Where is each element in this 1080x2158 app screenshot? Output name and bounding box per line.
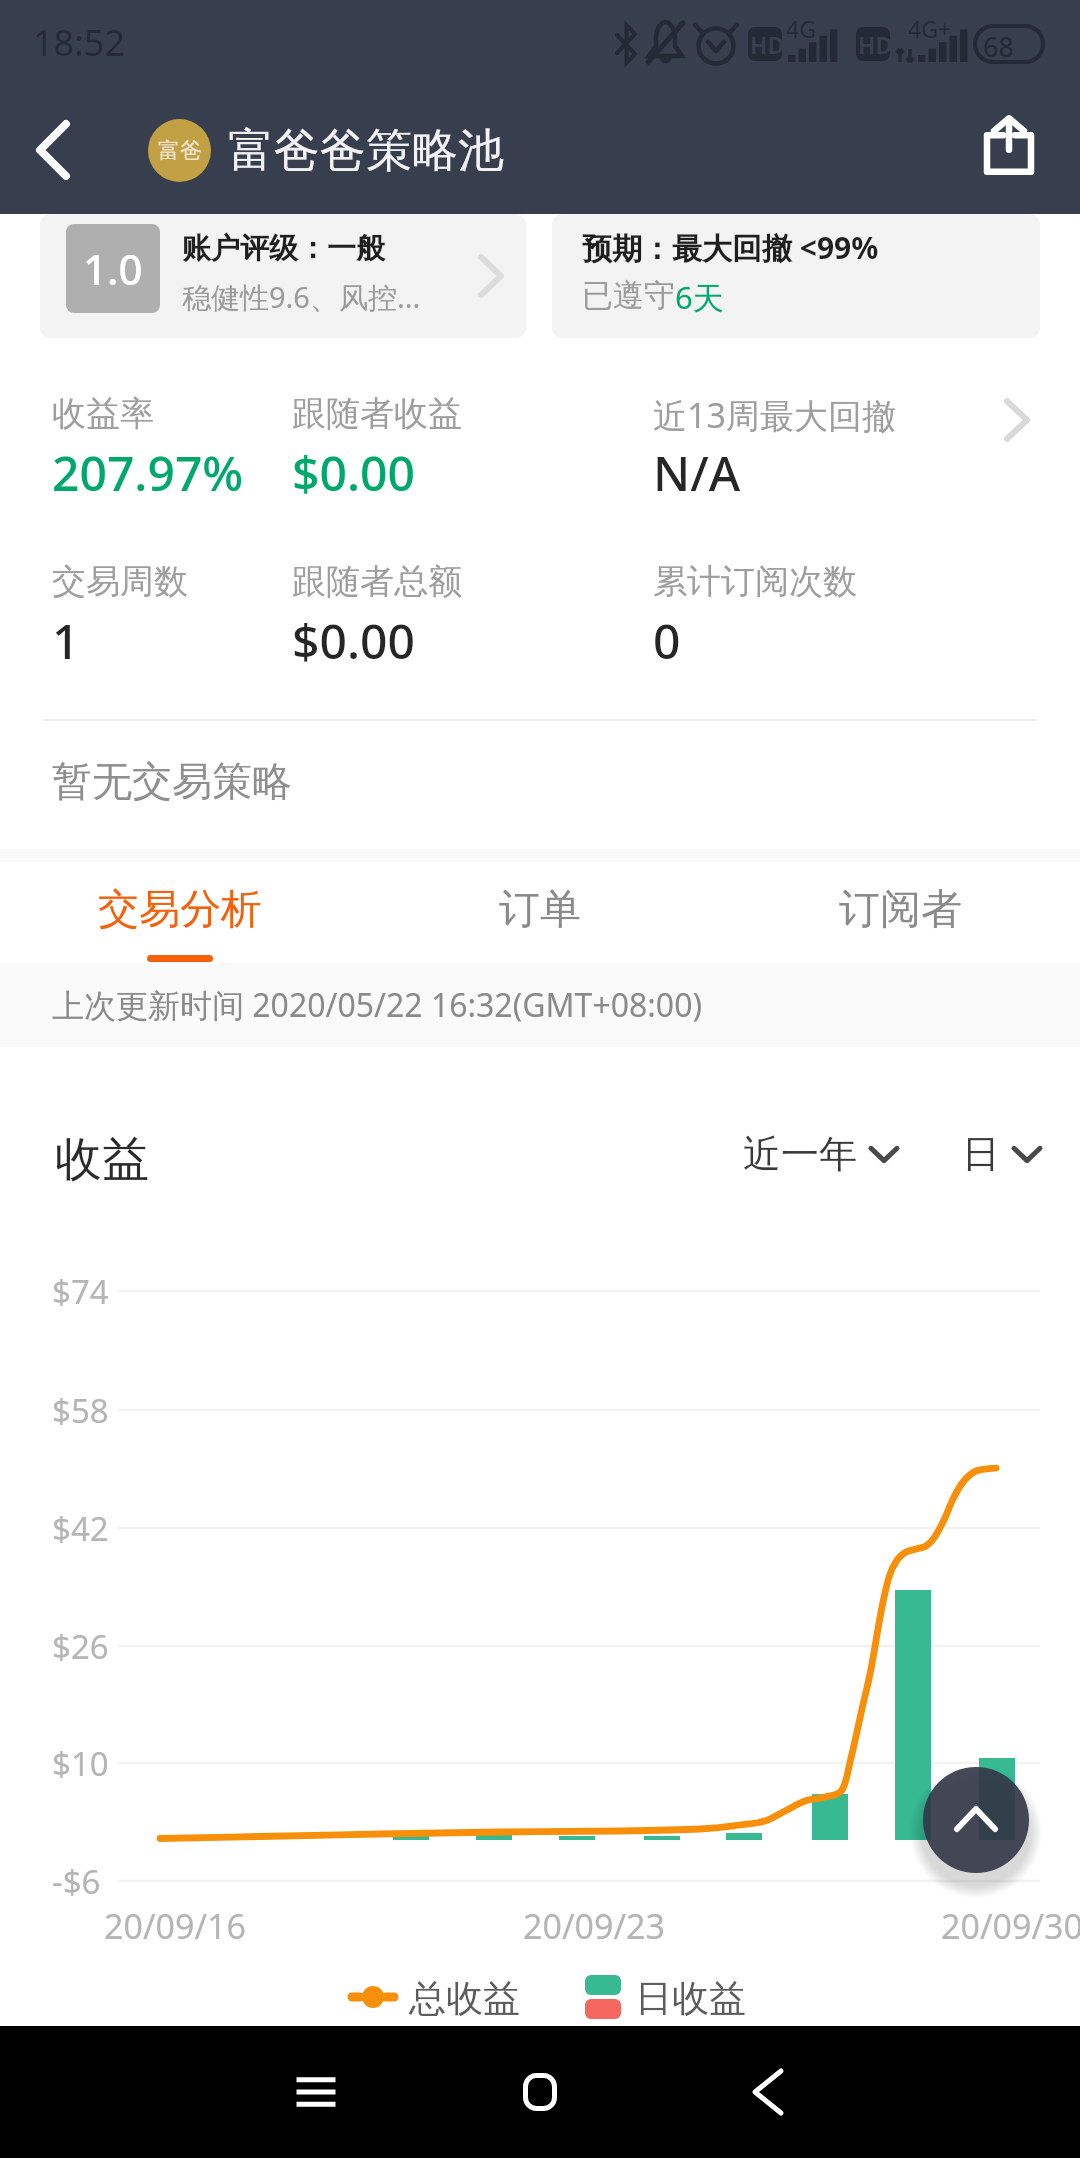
staticText: 6天 [675, 276, 724, 318]
button[interactable]: Recents [236, 2026, 396, 2158]
staticText: 交易分析 [98, 884, 262, 936]
staticText: 富爸 [158, 137, 202, 165]
staticText: 收益率 [52, 392, 154, 435]
staticText: 20/09/23 [523, 1903, 665, 1949]
staticText: 18:52 [33, 18, 126, 67]
staticText: 4G+ [908, 13, 952, 44]
staticText: N/A [653, 440, 741, 505]
button[interactable]: 近一年 [743, 1130, 898, 1178]
button[interactable]: Back [0, 86, 110, 214]
button[interactable]: 订阅者 [720, 862, 1080, 963]
button[interactable]: Scroll to top [923, 1767, 1029, 1873]
staticText: 预期：最大回撤 <99% [582, 227, 879, 268]
staticText: 207.97% [52, 440, 244, 505]
staticText: -$6 [52, 1859, 101, 1904]
staticText: $74 [52, 1269, 109, 1314]
button[interactable]: 预期：最大回撤 <99% [552, 214, 1040, 338]
staticText: 稳健性9.6、风控... [182, 277, 421, 317]
staticText: $26 [52, 1624, 109, 1669]
staticText: 订阅者 [839, 884, 962, 936]
button[interactable]: 收益率 [0, 350, 1080, 715]
staticText: $42 [52, 1506, 109, 1551]
staticText: 收益 [55, 1130, 149, 1189]
button[interactable]: 暂无交易策略 [0, 721, 1080, 849]
staticText: 日收益 [635, 1975, 746, 2022]
staticText: 近13周最大回撤 [653, 392, 896, 438]
staticText: 总收益 [409, 1975, 520, 2022]
button[interactable]: Total return legend [350, 1982, 396, 2012]
staticText: 日 [962, 1130, 1000, 1178]
staticText: HD [750, 29, 785, 60]
button[interactable]: 1.0 [40, 214, 526, 338]
staticText: 已遵守 [582, 276, 675, 315]
staticText: 4G [786, 13, 816, 44]
button[interactable]: Back [688, 2026, 848, 2158]
staticText: 跟随者总额 [292, 560, 462, 603]
button[interactable]: 订单 [360, 862, 720, 963]
staticText: $10 [52, 1741, 109, 1786]
staticText: 累计订阅次数 [653, 560, 857, 603]
staticText: 1.0 [83, 240, 143, 297]
staticText: 20/09/30 [941, 1903, 1080, 1949]
staticText: 近一年 [743, 1130, 857, 1178]
staticText: 1 [52, 608, 80, 673]
staticText: 账户评级：一般 [182, 230, 385, 267]
staticText: 0 [653, 608, 681, 673]
staticText: 上次更新时间 2020/05/22 16:32(GMT+08:00) [52, 983, 703, 1027]
staticText: 订单 [499, 884, 581, 936]
staticText: $0.00 [292, 608, 415, 673]
staticText: 68 [983, 28, 1014, 65]
staticText: $58 [52, 1388, 109, 1433]
staticText: 富爸爸策略池 [228, 122, 504, 180]
staticText: $0.00 [292, 440, 415, 505]
button[interactable]: Home [460, 2026, 620, 2158]
button[interactable]: 日 [962, 1130, 1041, 1178]
button[interactable]: Share [949, 86, 1069, 214]
staticText: 交易周数 [52, 560, 188, 603]
staticText: 跟随者收益 [292, 392, 462, 435]
button[interactable]: 交易分析 [0, 862, 360, 963]
staticText: HD [858, 29, 893, 60]
staticText: 暂无交易策略 [52, 756, 292, 806]
staticText: 20/09/16 [104, 1903, 246, 1949]
